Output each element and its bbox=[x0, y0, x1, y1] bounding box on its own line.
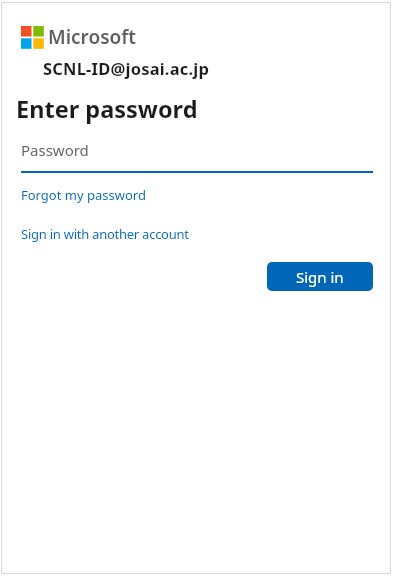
staticText: Sign in bbox=[296, 267, 344, 287]
button[interactable]: Forgot my password bbox=[21, 186, 146, 204]
button[interactable]: Password bbox=[21, 140, 373, 173]
button[interactable]: Sign in with another account bbox=[21, 225, 189, 243]
staticText: Password bbox=[21, 140, 89, 160]
staticText: SCNL-ID@josai.ac.jp bbox=[43, 57, 210, 79]
staticText: Enter password bbox=[16, 93, 198, 125]
staticText: Microsoft bbox=[48, 24, 137, 50]
button[interactable]: Sign in bbox=[267, 262, 373, 291]
